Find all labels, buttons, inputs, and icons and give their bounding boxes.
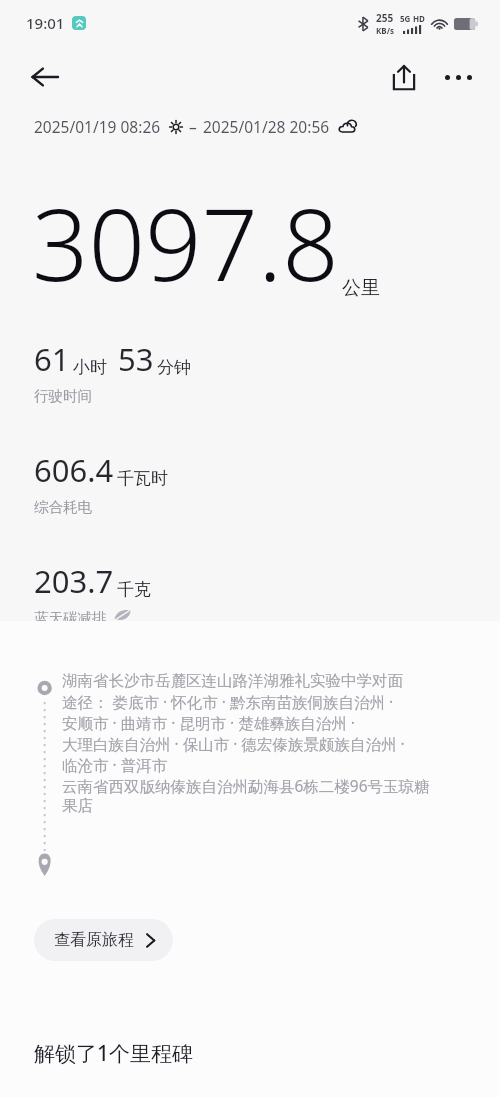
staticText: 蓝天碳减排 — [34, 609, 107, 621]
staticText: HD — [413, 13, 425, 24]
staticText: 临沧市 · 普洱市 — [62, 754, 168, 775]
staticText: 大理白族自治州 · 保山市 · 德宏傣族景颇族自治州 · — [62, 733, 405, 754]
staticText: 千瓦时 — [117, 468, 168, 489]
staticText: KB/s — [376, 25, 394, 36]
button[interactable]: Back — [20, 53, 68, 101]
staticText: 综合耗电 — [34, 498, 92, 516]
staticText: 255 — [376, 11, 394, 25]
staticText: 安顺市 · 曲靖市 · 昆明市 · 楚雄彝族自治州 · — [62, 712, 355, 733]
staticText: 云南省西双版纳傣族自治州勐海县6栋二楼96号玉琼糖 — [62, 775, 430, 796]
staticText: 2025/01/19 08:26 — [34, 116, 161, 137]
staticText: 查看原旅程 — [54, 930, 134, 950]
staticText: 2025/01/28 20:56 — [203, 116, 330, 137]
staticText: 千克 — [117, 579, 151, 600]
staticText: 19:01 — [26, 13, 65, 33]
staticText: 5G — [400, 13, 411, 24]
staticText: 小时 — [73, 357, 107, 378]
staticText: 途径： 娄底市 · 怀化市 · 黔东南苗族侗族自治州 · — [62, 691, 394, 712]
staticText: 61 — [34, 338, 70, 380]
button[interactable]: 查看原旅程 — [34, 919, 173, 961]
staticText: 分钟 — [157, 357, 191, 378]
staticText: – — [189, 116, 197, 137]
staticText: 解锁了1个里程碑 — [34, 1039, 194, 1068]
button[interactable]: Share — [380, 53, 428, 101]
staticText: 53 — [118, 338, 154, 380]
staticText: 203.7 — [34, 560, 114, 602]
staticText: 果店 — [62, 796, 93, 816]
staticText: 公里 — [342, 276, 380, 300]
staticText: 行驶时间 — [34, 387, 92, 405]
staticText: 606.4 — [34, 449, 114, 491]
staticText: 3097.8 — [32, 175, 339, 310]
staticText: 湖南省长沙市岳麓区连山路洋湖雅礼实验中学对面 — [62, 671, 403, 691]
button[interactable]: More options — [434, 53, 482, 101]
